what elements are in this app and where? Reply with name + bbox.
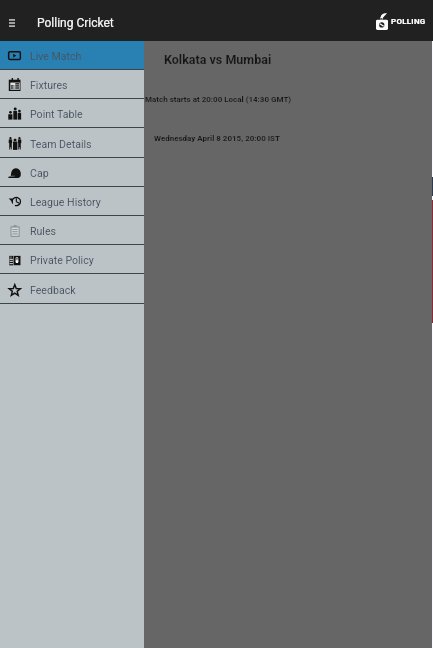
staticText: POLLING [391,17,426,26]
button[interactable]: Live Match [0,41,144,70]
staticText: Fixtures [30,79,68,91]
staticText: Private Policy [30,254,94,266]
button[interactable]: Point Table [0,99,144,128]
staticText: Polling Cricket [37,16,114,30]
button[interactable]: Fixtures [0,70,144,99]
staticText: Point Table [30,108,83,120]
button[interactable]: Cap [0,158,144,187]
staticText: Feedback [30,284,76,296]
button[interactable]: Polling [376,12,433,29]
staticText: Team Details [30,138,92,150]
button[interactable]: Open navigation drawer [0,0,24,41]
staticText: Kolkata vs Mumbai [164,52,272,67]
staticText: Cap [30,167,49,179]
button[interactable]: Private Policy [0,245,144,274]
button[interactable]: Feedback [0,275,144,304]
staticText: Match starts at 20:00 Local (14:30 GMT) [145,95,292,104]
button[interactable]: Team Details [0,129,144,158]
button[interactable]: League History [0,187,144,216]
staticText: League History [30,196,101,208]
staticText: Rules [30,225,57,237]
staticText: Live Match [30,50,82,62]
button[interactable]: Rules [0,216,144,245]
staticText: Wednesday April 8 2015, 20:00 IST [154,134,280,143]
